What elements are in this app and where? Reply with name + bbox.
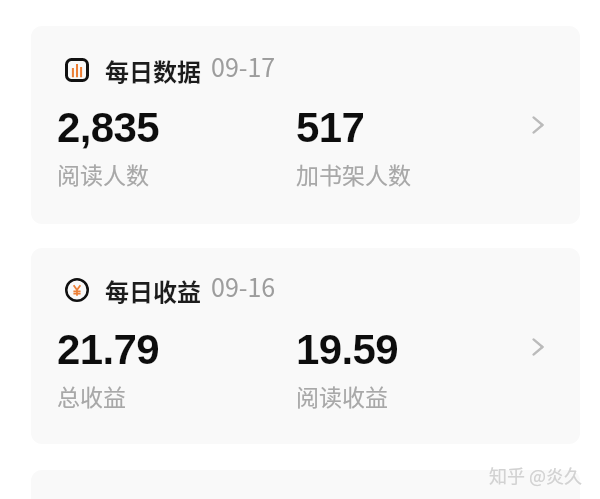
button[interactable] bbox=[31, 470, 580, 499]
staticText: 知乎 @炎久 bbox=[489, 462, 583, 488]
staticText: 总收益 bbox=[57, 379, 126, 412]
staticText: 每日数据 bbox=[105, 53, 201, 88]
staticText: 517 bbox=[296, 104, 365, 151]
staticText: 每日收益 bbox=[105, 273, 201, 308]
staticText: 19.59 bbox=[296, 326, 399, 373]
staticText: 加书架人数 bbox=[296, 157, 411, 190]
button[interactable]: 查看详情 bbox=[521, 330, 555, 364]
button[interactable]: 查看详情 bbox=[521, 108, 555, 142]
staticText: 09-16 bbox=[211, 268, 276, 304]
staticText: 21.79 bbox=[57, 326, 160, 373]
button[interactable]: 每日收益 bbox=[31, 248, 580, 444]
staticText: 阅读收益 bbox=[296, 379, 388, 412]
staticText: 09-17 bbox=[211, 48, 276, 84]
button[interactable]: 每日数据 bbox=[31, 26, 580, 224]
staticText: 2,835 bbox=[57, 104, 160, 151]
staticText: 阅读人数 bbox=[57, 157, 149, 190]
